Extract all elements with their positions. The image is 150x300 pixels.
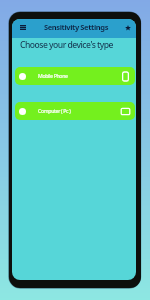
staticText: Computer ( Pc ) [38,107,71,114]
button[interactable]: Computer ( Pc ) [15,102,135,120]
button[interactable]: Mobile Phone [15,67,135,85]
button[interactable]: Menu [17,23,28,34]
button[interactable]: Favorite [122,23,133,34]
staticText: Mobile Phone [38,72,68,79]
staticText: Choose your device's type [20,39,114,51]
staticText: Sensitivity Settings [29,22,123,32]
